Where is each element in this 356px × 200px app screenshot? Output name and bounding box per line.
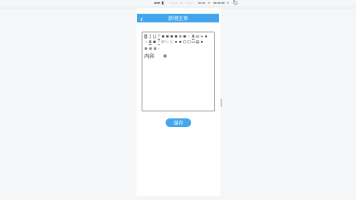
staticText: ▬▬▬: [213, 0, 225, 5]
staticText: ↻: [232, 0, 238, 6]
staticText: ▪: [227, 1, 229, 4]
staticText: I: [149, 33, 151, 40]
staticText: ▰▰: [154, 0, 160, 5]
staticText: ▬▬: [198, 0, 206, 5]
staticText: T: [158, 39, 160, 44]
staticText: ▫: [180, 0, 183, 5]
staticText: ‹: [140, 12, 143, 24]
staticText: 儲存: [173, 119, 183, 126]
button[interactable]: Back: [137, 14, 146, 22]
staticText: ▮: [161, 0, 163, 5]
button[interactable]: 儲存: [166, 118, 191, 127]
staticText: T: [158, 33, 160, 38]
staticText: f: [145, 39, 146, 44]
staticText: B: [144, 33, 148, 40]
staticText: U: [152, 33, 156, 40]
staticText: ▪: [208, 1, 210, 4]
staticText: A: [192, 33, 195, 38]
button[interactable]: Reload: [233, 0, 238, 5]
staticText: A: [149, 39, 152, 44]
staticText: 內容: [144, 53, 154, 59]
staticText: ▭▭: [186, 0, 194, 5]
staticText: 新增文章: [168, 15, 188, 21]
staticText: ▭▭: [169, 0, 177, 5]
